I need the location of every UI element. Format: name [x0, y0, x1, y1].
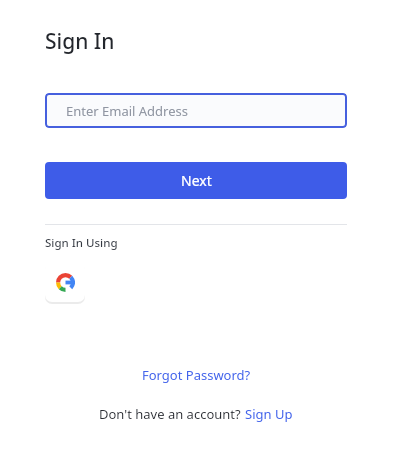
staticText: Sign In: [45, 27, 115, 56]
button[interactable]: Sign in with Google: [45, 262, 85, 302]
staticText: Sign In Using: [45, 235, 118, 251]
button[interactable]: Next: [45, 162, 347, 199]
button[interactable]: Sign Up: [245, 405, 293, 423]
staticText: Sign Up: [245, 405, 293, 423]
staticText: Enter Email Address: [66, 102, 188, 120]
button[interactable]: Forgot Password?: [136, 363, 257, 387]
staticText: Forgot Password?: [142, 366, 251, 384]
button[interactable]: Enter Email Address: [45, 93, 347, 128]
staticText: Next: [181, 171, 212, 190]
staticText: Don't have an account?: [99, 405, 245, 423]
